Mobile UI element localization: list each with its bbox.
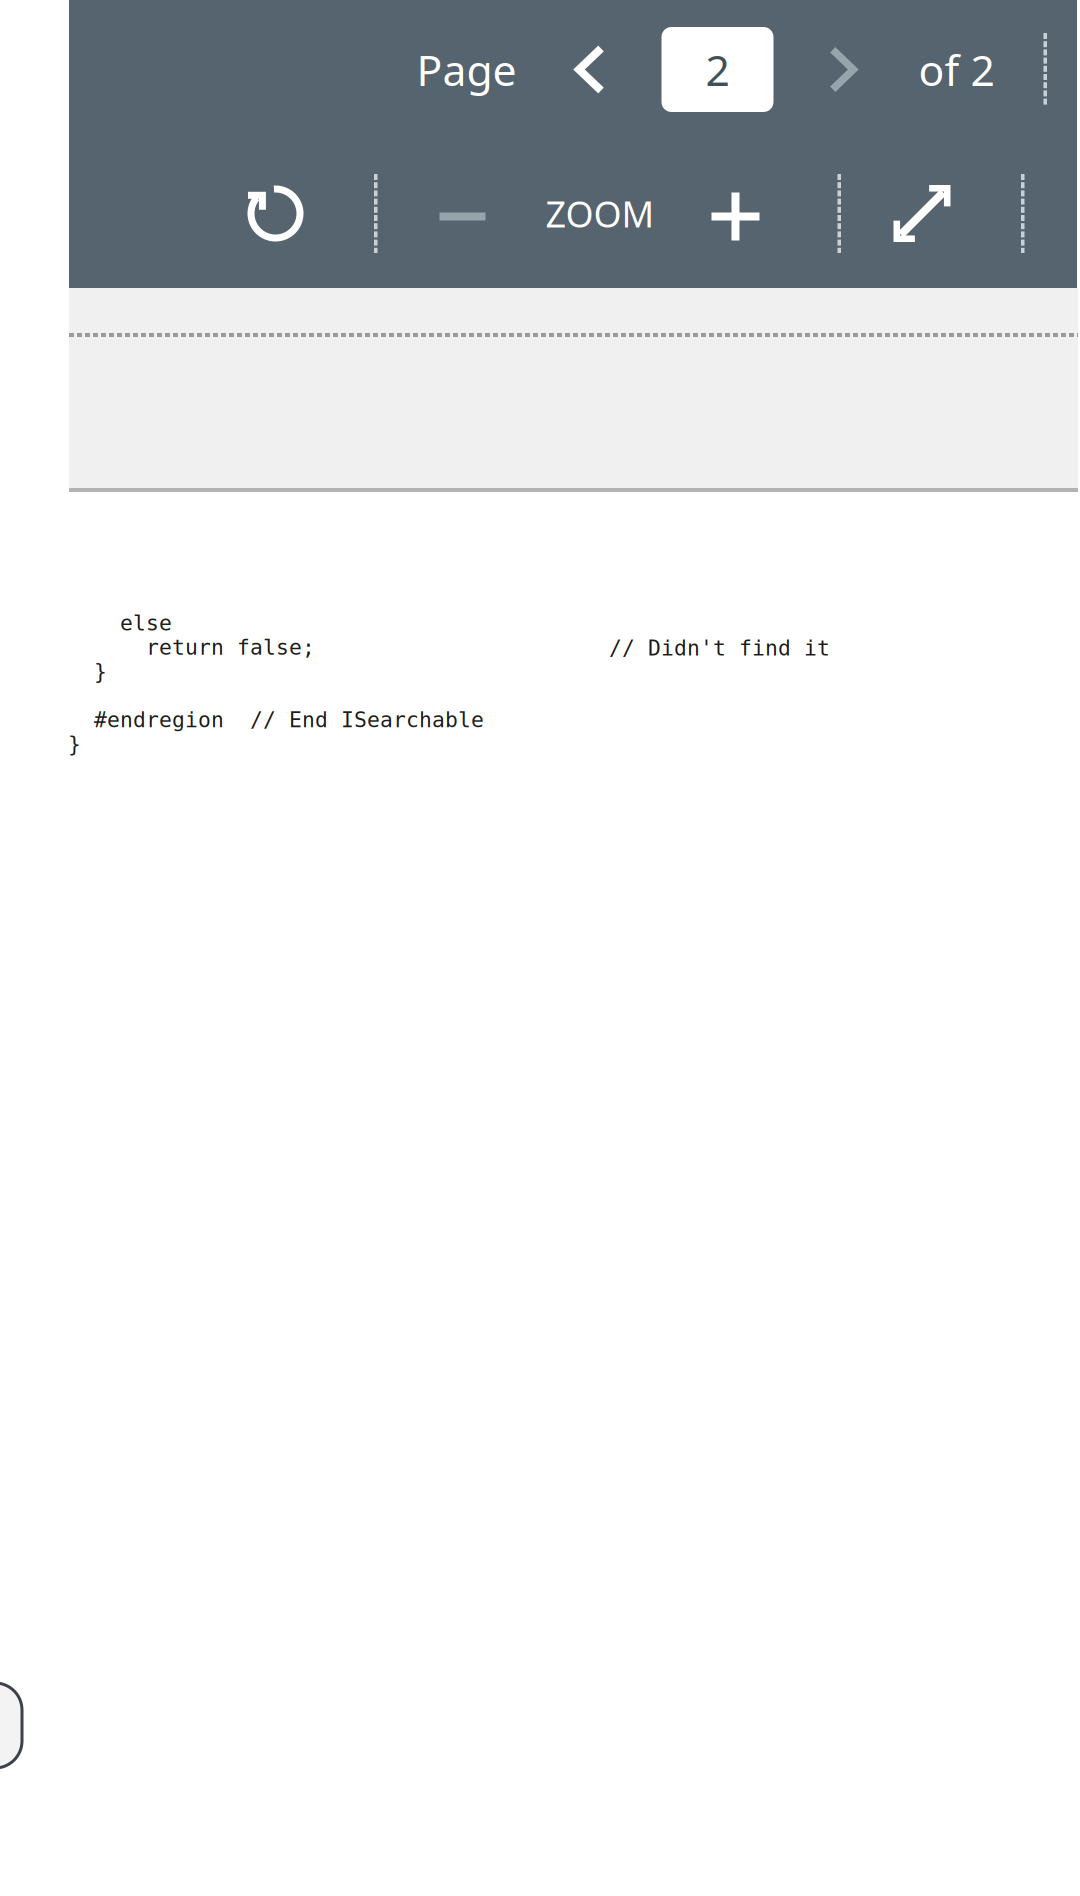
staticText: // Didn't find it (609, 636, 830, 660)
staticText: ZOOM (545, 190, 654, 237)
button[interactable]: 2 (661, 27, 773, 112)
staticText: else return false; } #endregion // End I… (68, 611, 484, 756)
button[interactable]: Page tools (0, 1683, 22, 1768)
button[interactable]: Previous page (546, 13, 633, 125)
staticText: of 2 (918, 41, 994, 98)
staticText: 2 (705, 41, 729, 98)
staticText: Page (416, 41, 516, 98)
button[interactable]: Reset zoom (225, 157, 326, 269)
button[interactable]: Zoom in (704, 163, 766, 263)
button[interactable]: Fit to width (872, 157, 972, 269)
button[interactable]: Zoom out (431, 163, 493, 263)
button[interactable]: Next page (799, 13, 886, 125)
